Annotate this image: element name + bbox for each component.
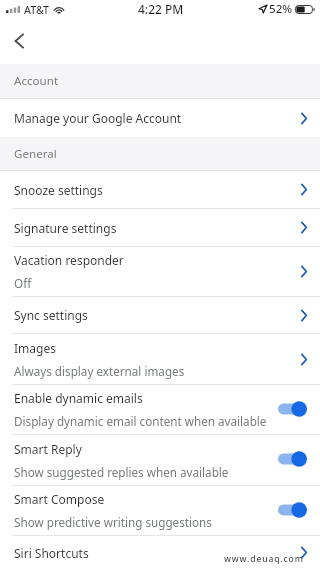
staticText: Smart Reply <box>14 441 82 457</box>
staticText: Snooze settings <box>14 182 103 198</box>
button[interactable]: Toggle <box>278 450 307 470</box>
button[interactable]: Back <box>4 25 36 57</box>
staticText: Account <box>14 73 59 89</box>
staticText: Off <box>14 275 32 291</box>
button[interactable]: Vacation responder <box>0 247 320 296</box>
button[interactable]: Sync settings <box>0 297 320 333</box>
staticText: Show predictive writing suggestions <box>14 514 212 530</box>
staticText: Vacation responder <box>14 252 124 268</box>
staticText: Always display external images <box>14 363 185 379</box>
staticText: 4:22 PM <box>138 1 184 17</box>
staticText: General <box>14 146 57 162</box>
button[interactable]: Smart Compose <box>0 486 320 535</box>
staticText: Smart Compose <box>14 491 105 507</box>
staticText: Enable dynamic emails <box>14 390 143 406</box>
staticText: Images <box>14 340 56 356</box>
button[interactable]: Snooze settings <box>0 171 320 208</box>
button[interactable]: Manage your Google Account <box>0 99 320 137</box>
button[interactable]: Signature settings <box>0 209 320 246</box>
button[interactable]: Enable dynamic emails <box>0 385 320 434</box>
staticText: Sync settings <box>14 307 88 323</box>
staticText: Siri Shortcuts <box>14 545 89 561</box>
button[interactable]: Smart Reply <box>0 435 320 485</box>
button[interactable]: Toggle <box>278 400 307 420</box>
staticText: 52% <box>269 1 293 17</box>
button[interactable]: Siri Shortcuts <box>0 536 320 569</box>
staticText: Show suggested replies when available <box>14 464 229 480</box>
staticText: www.deuaq.com <box>224 553 304 565</box>
staticText: Display dynamic email content when avail… <box>14 413 267 429</box>
button[interactable]: Toggle <box>278 501 307 521</box>
button[interactable]: Images <box>0 334 320 384</box>
staticText: Signature settings <box>14 220 117 236</box>
staticText: AT&T <box>24 3 50 17</box>
staticText: Manage your Google Account <box>14 110 182 126</box>
